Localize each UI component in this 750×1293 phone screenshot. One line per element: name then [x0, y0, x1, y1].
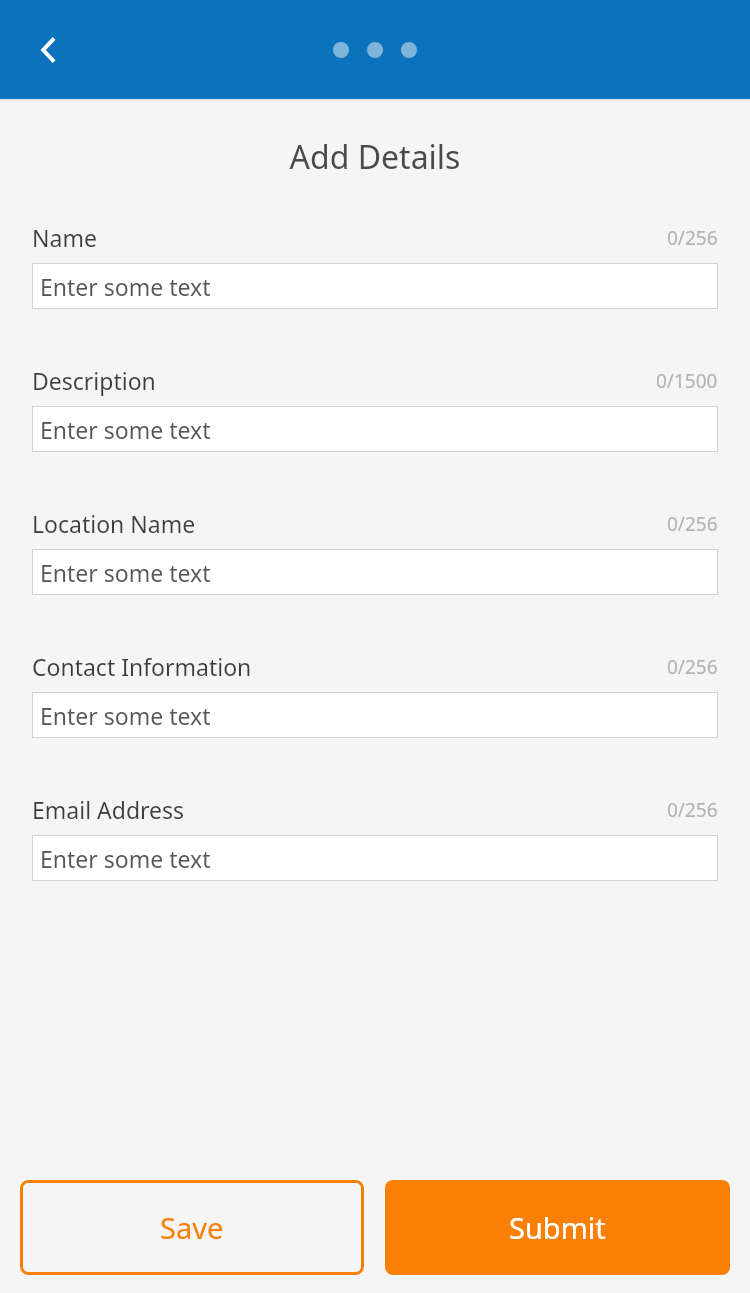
button[interactable]: Enter some text [32, 406, 718, 452]
button[interactable]: Submit [385, 1180, 730, 1275]
staticText: Enter some text [40, 843, 211, 874]
staticText: Email Address [32, 794, 185, 825]
button[interactable]: Enter some text [32, 835, 718, 881]
staticText: 0/256 [667, 225, 718, 251]
staticText: Add Details [0, 135, 750, 179]
staticText: 0/256 [667, 654, 718, 680]
staticText: Enter some text [40, 414, 211, 445]
staticText: Enter some text [40, 271, 211, 302]
button[interactable]: Save [20, 1180, 364, 1275]
staticText: Enter some text [40, 557, 211, 588]
staticText: Submit [509, 1208, 606, 1247]
button[interactable]: Enter some text [32, 263, 718, 309]
staticText: Location Name [32, 508, 196, 539]
staticText: Name [32, 222, 97, 253]
staticText: Save [160, 1208, 224, 1247]
staticText: 0/256 [667, 797, 718, 823]
button[interactable]: Back [22, 22, 78, 78]
staticText: Contact Information [32, 651, 252, 682]
staticText: Enter some text [40, 700, 211, 731]
staticText: Description [32, 365, 156, 396]
staticText: 0/1500 [656, 368, 718, 394]
button[interactable]: Enter some text [32, 549, 718, 595]
button[interactable]: Enter some text [32, 692, 718, 738]
staticText: 0/256 [667, 511, 718, 537]
